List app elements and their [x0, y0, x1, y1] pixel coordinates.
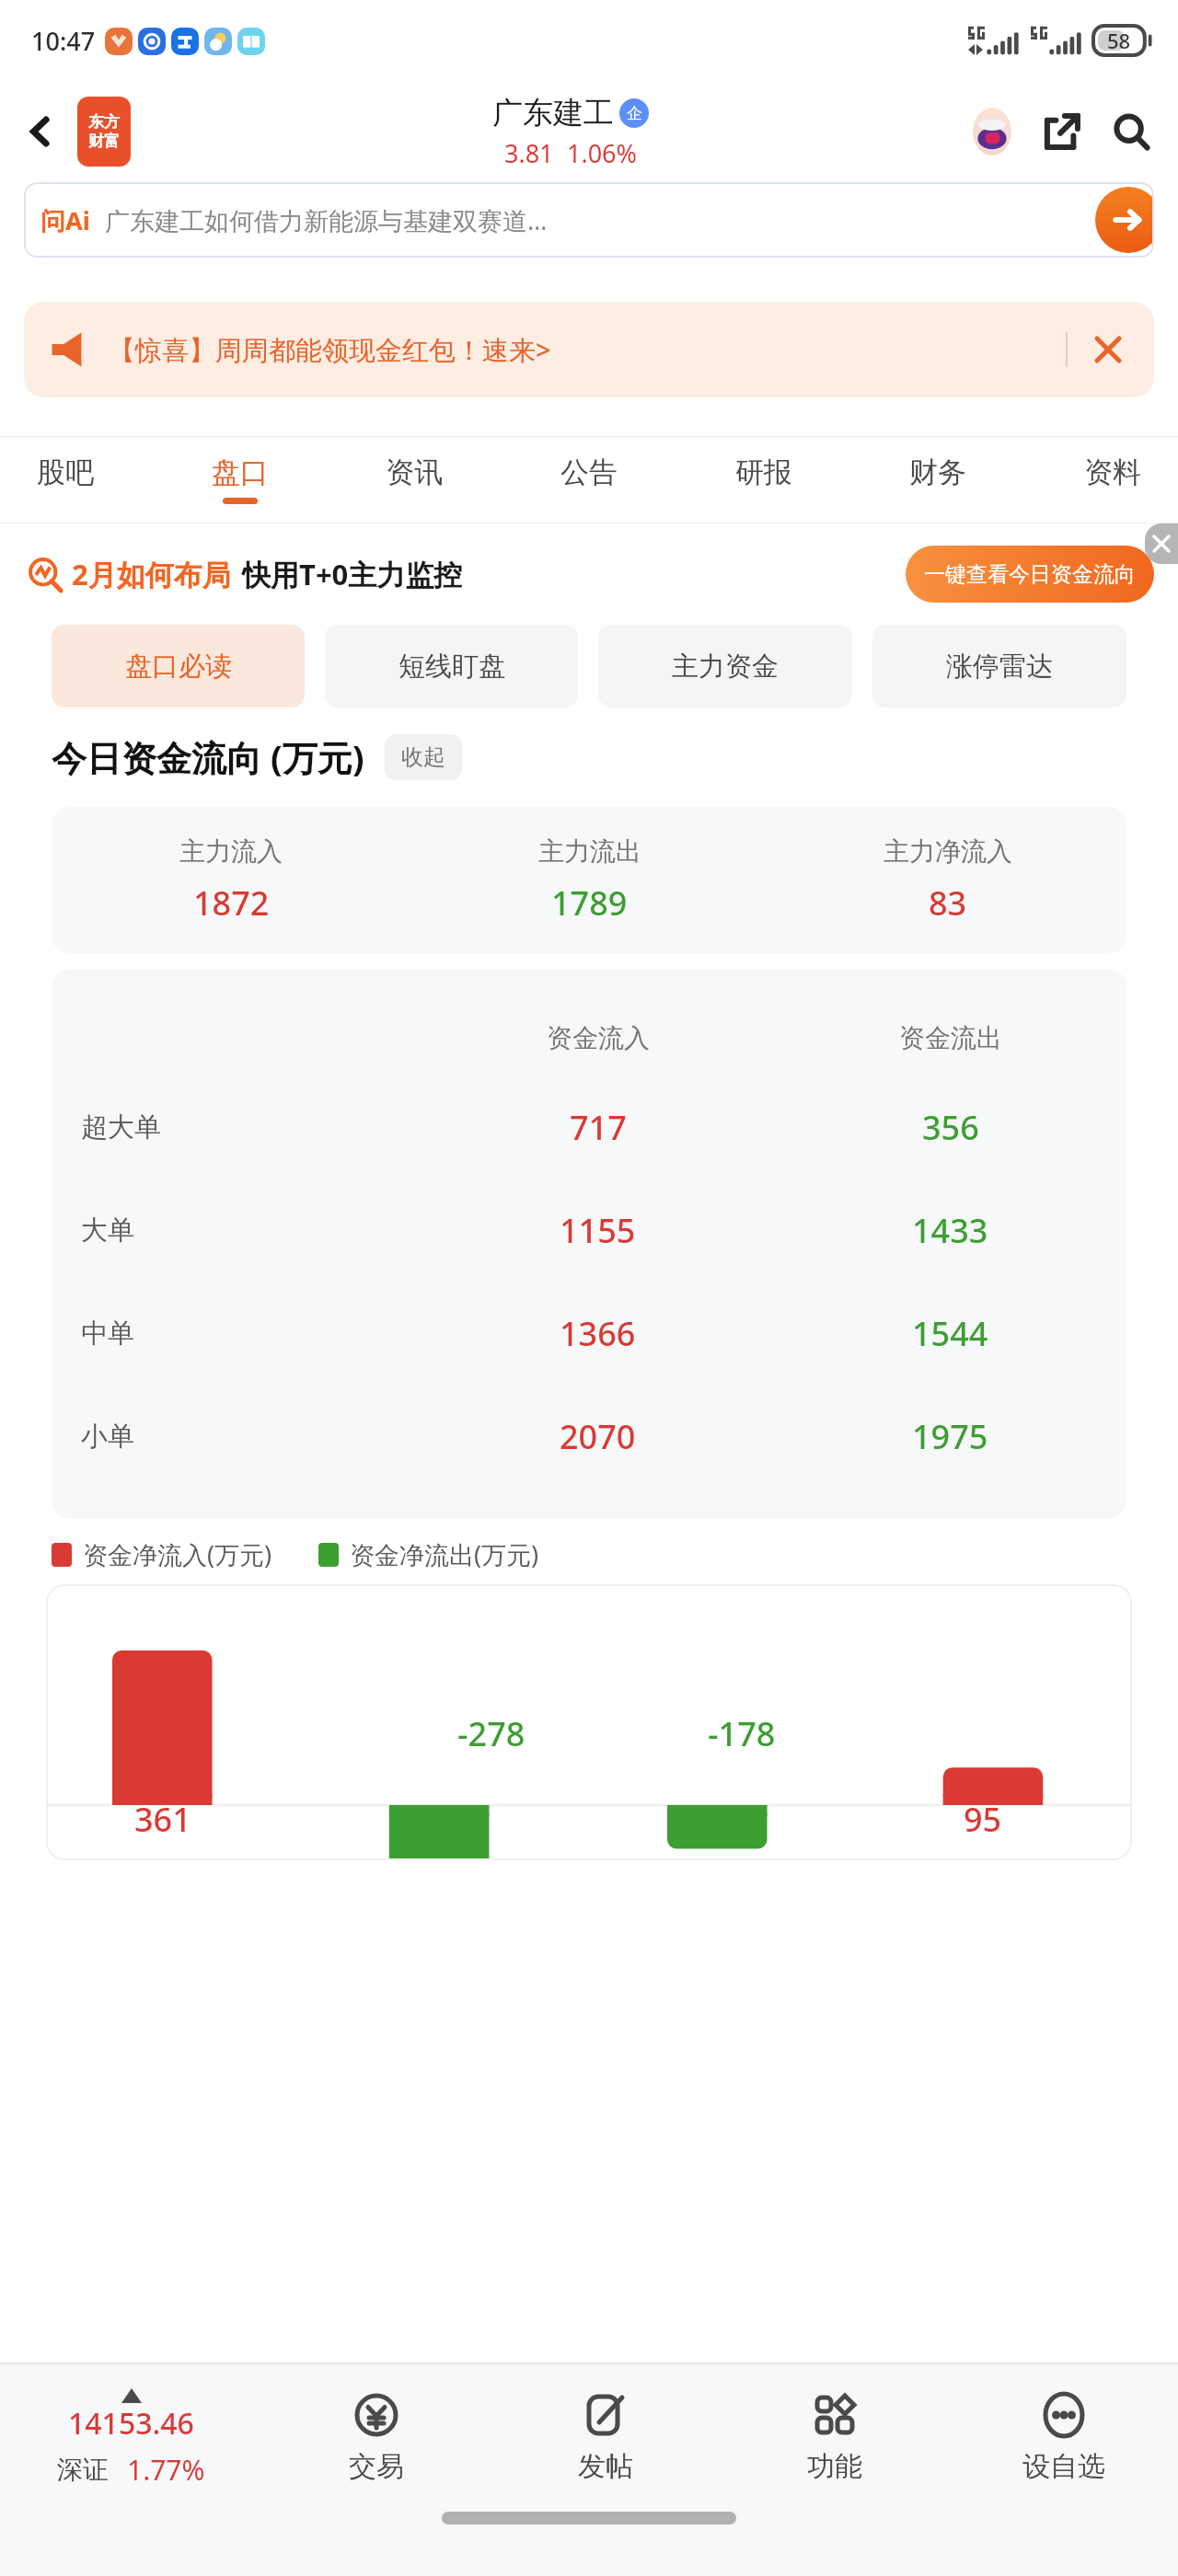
- staticText: 盘口必读: [125, 650, 232, 684]
- staticText: 大单: [81, 1213, 134, 1248]
- staticText: 企: [627, 104, 642, 123]
- staticText: 10:47: [31, 24, 96, 58]
- staticText: 交易: [349, 2449, 404, 2484]
- staticText: 小单: [81, 1420, 134, 1454]
- button[interactable]: 一键查看今日资金流向: [924, 546, 1136, 603]
- staticText: 95: [964, 1797, 1002, 1842]
- staticText: 广东建工: [492, 94, 614, 132]
- staticText: 3.81: [504, 136, 554, 170]
- staticText: 1975: [912, 1414, 988, 1459]
- button[interactable]: Ask AI: [1095, 187, 1154, 253]
- button[interactable]: 东方: [77, 97, 131, 167]
- staticText: 主力流出: [538, 835, 641, 868]
- button[interactable]: Assistant: [964, 104, 1020, 159]
- staticText: 公告: [560, 454, 618, 490]
- staticText: 研报: [735, 454, 792, 490]
- button[interactable]: Search: [1104, 105, 1158, 158]
- staticText: 1433: [912, 1208, 988, 1253]
- staticText: -278: [457, 1711, 525, 1756]
- staticText: 盘口: [212, 454, 269, 490]
- staticText: 资料: [1084, 454, 1141, 490]
- staticText: 超大单: [81, 1110, 161, 1144]
- button[interactable]: 盘口: [212, 436, 269, 523]
- button[interactable]: 公告: [560, 436, 618, 523]
- staticText: 14153.46: [68, 2403, 194, 2444]
- staticText: 1544: [912, 1311, 988, 1356]
- staticText: 【惊喜】周周都能领现金红包！速来>: [109, 331, 551, 368]
- button[interactable]: 问Ai: [24, 182, 1154, 258]
- staticText: 83: [929, 880, 967, 926]
- staticText: 股吧: [37, 454, 94, 490]
- staticText: 1.77%: [127, 2451, 205, 2489]
- button[interactable]: 财务: [909, 436, 966, 523]
- button[interactable]: 股吧: [37, 436, 94, 523]
- button[interactable]: 功能: [720, 2364, 949, 2512]
- button[interactable]: Share: [1036, 105, 1090, 158]
- staticText: 资金净流入(万元): [83, 1537, 272, 1571]
- staticText: 2070: [560, 1414, 636, 1459]
- staticText: 1366: [560, 1311, 636, 1356]
- button[interactable]: 研报: [735, 436, 792, 523]
- staticText: 深证: [57, 2454, 109, 2486]
- staticText: 设自选: [1022, 2449, 1105, 2484]
- button[interactable]: 短线盯盘: [325, 625, 578, 707]
- staticText: 资金流出: [899, 1022, 1002, 1054]
- button[interactable]: Close promo: [1145, 523, 1178, 564]
- staticText: 2月如何布局: [72, 555, 231, 593]
- button[interactable]: 资料: [1084, 436, 1141, 523]
- button[interactable]: 14153.46: [0, 2388, 262, 2489]
- staticText: 短线盯盘: [398, 650, 505, 684]
- staticText: 中单: [81, 1317, 134, 1351]
- staticText: 资讯: [386, 454, 443, 490]
- staticText: 收起: [401, 743, 445, 771]
- staticText: -178: [708, 1711, 776, 1756]
- staticText: 356: [922, 1105, 979, 1150]
- staticText: 一键查看今日资金流向: [924, 561, 1136, 588]
- button[interactable]: 收起: [401, 734, 445, 780]
- staticText: 涨停雷达: [946, 650, 1053, 684]
- staticText: 主力资金: [672, 650, 779, 684]
- button[interactable]: 涨停雷达: [872, 625, 1126, 707]
- staticText: 广东建工如何借力新能源与基建双赛道…: [105, 203, 1154, 237]
- staticText: 主力流入: [179, 835, 283, 868]
- staticText: 问Ai: [40, 203, 90, 237]
- staticText: 资金流入: [547, 1022, 650, 1054]
- staticText: 财富: [88, 132, 120, 151]
- button[interactable]: 设自选: [949, 2364, 1178, 2512]
- staticText: 1.06%: [567, 136, 638, 170]
- staticText: 发帖: [578, 2449, 633, 2484]
- staticText: 主力净流入: [883, 835, 1012, 868]
- button[interactable]: 【惊喜】周周都能领现金红包！速来>: [24, 302, 1154, 397]
- button[interactable]: Close: [1088, 329, 1128, 370]
- button[interactable]: 盘口必读: [52, 625, 305, 707]
- staticText: 361: [134, 1797, 191, 1842]
- button[interactable]: 交易: [262, 2364, 491, 2512]
- staticText: 1155: [560, 1208, 636, 1253]
- staticText: 1872: [193, 880, 270, 926]
- staticText: 东方: [88, 112, 120, 132]
- staticText: 快用T+0主力监控: [242, 555, 463, 593]
- staticText: 717: [570, 1105, 627, 1150]
- staticText: 58: [1107, 27, 1131, 54]
- button[interactable]: 资讯: [386, 436, 443, 523]
- staticText: 1789: [551, 880, 628, 926]
- staticText: 今日资金流向 (万元): [52, 733, 364, 781]
- button[interactable]: 主力资金: [598, 625, 852, 707]
- staticText: 财务: [909, 454, 966, 490]
- staticText: 功能: [807, 2449, 862, 2484]
- staticText: 资金净流出(万元): [350, 1537, 539, 1571]
- button[interactable]: Back: [15, 106, 66, 157]
- button[interactable]: 发帖: [491, 2364, 720, 2512]
